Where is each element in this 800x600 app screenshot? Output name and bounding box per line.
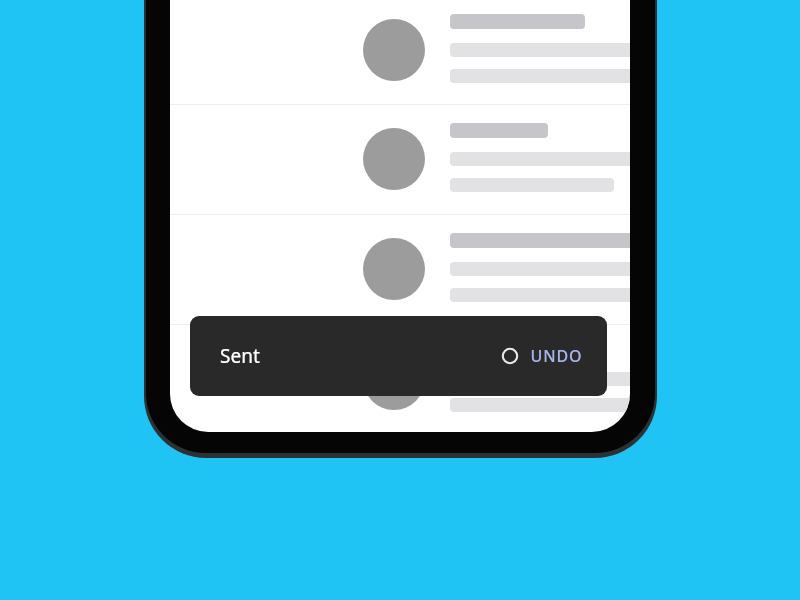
button[interactable]: Undo xyxy=(500,345,583,367)
button[interactable] xyxy=(170,214,630,324)
button[interactable] xyxy=(170,104,630,214)
button[interactable] xyxy=(170,0,630,110)
staticText: UNDO xyxy=(530,345,583,367)
staticText: Sent xyxy=(220,343,260,369)
button[interactable]: Sent xyxy=(190,316,607,396)
button[interactable] xyxy=(170,324,630,432)
